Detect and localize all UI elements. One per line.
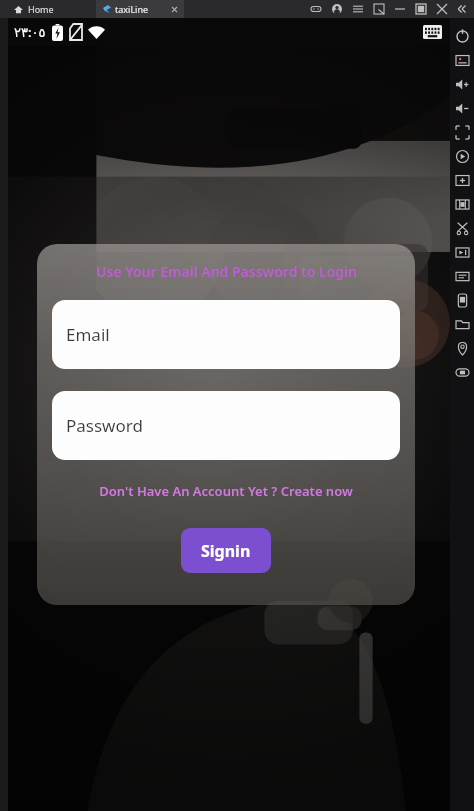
staticText: Signin (201, 540, 251, 562)
button[interactable]: Keyboard (423, 25, 442, 39)
button[interactable]: Game controller (310, 3, 322, 15)
button[interactable]: Logs (450, 264, 474, 288)
button[interactable]: Cut (450, 216, 474, 240)
button[interactable]: Rotate (450, 120, 474, 144)
button[interactable]: Minimise (394, 3, 406, 15)
button[interactable]: Add (450, 168, 474, 192)
button[interactable]: Camera (450, 192, 474, 216)
button[interactable]: Email (52, 300, 400, 369)
button[interactable]: Play (450, 144, 474, 168)
button[interactable]: Account (331, 3, 343, 15)
button[interactable]: Location (450, 336, 474, 360)
button[interactable]: Don't Have An Account Yet ? Create now (52, 482, 400, 500)
button[interactable]: Screenshot (450, 48, 474, 72)
button[interactable]: Collapse (456, 3, 468, 15)
button[interactable]: Close tab (170, 5, 179, 14)
button[interactable]: Signin (181, 528, 271, 573)
button[interactable]: Power (450, 24, 474, 48)
button[interactable]: Volume down (450, 96, 474, 120)
button[interactable]: Maximise (415, 3, 427, 15)
button[interactable]: Screenshot (373, 3, 385, 15)
button[interactable]: Virtual sensors (450, 360, 474, 384)
staticText: Don't Have An Account Yet ? Create now (99, 482, 353, 500)
button[interactable]: Volume up (450, 72, 474, 96)
staticText: Email (66, 323, 110, 346)
button[interactable]: Home (14, 0, 54, 18)
staticText: taxiLine (115, 3, 149, 15)
button[interactable]: Files (450, 312, 474, 336)
staticText: Home (28, 3, 54, 15)
staticText: Password (66, 414, 143, 437)
button[interactable]: Record (450, 240, 474, 264)
button[interactable]: Close (436, 3, 448, 15)
button[interactable]: Menu (352, 3, 364, 15)
button[interactable]: taxiLine (96, 0, 184, 18)
button[interactable]: Password (52, 391, 400, 460)
staticText: Use Your Email And Password to Login (96, 262, 357, 281)
staticText: ٢٣:٠٥ (14, 23, 46, 41)
button[interactable]: Device (450, 288, 474, 312)
